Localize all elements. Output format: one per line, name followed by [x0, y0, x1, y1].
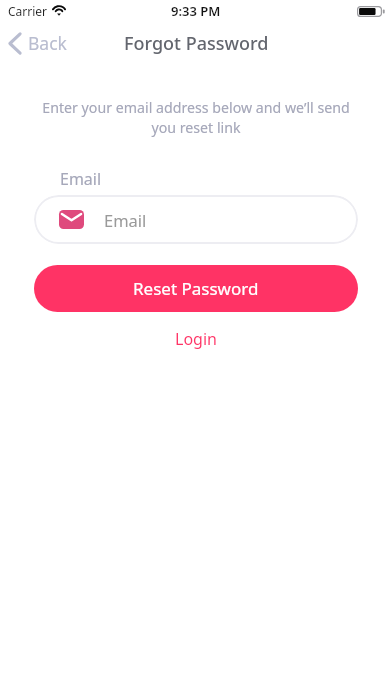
staticText: Reset Password	[133, 277, 259, 300]
button[interactable]: Email	[34, 195, 358, 244]
staticText: Back	[28, 31, 67, 55]
staticText: Email	[60, 168, 102, 190]
staticText: Email	[104, 209, 147, 231]
button[interactable]: Reset Password	[34, 265, 358, 312]
staticText: Enter your email address below and we’ll…	[30, 98, 362, 137]
staticText: Forgot Password	[124, 31, 269, 56]
button[interactable]: Back	[0, 25, 77, 59]
staticText: Carrier	[8, 3, 48, 19]
staticText: 9:33 PM	[171, 2, 221, 20]
button[interactable]: Login	[161, 325, 231, 353]
